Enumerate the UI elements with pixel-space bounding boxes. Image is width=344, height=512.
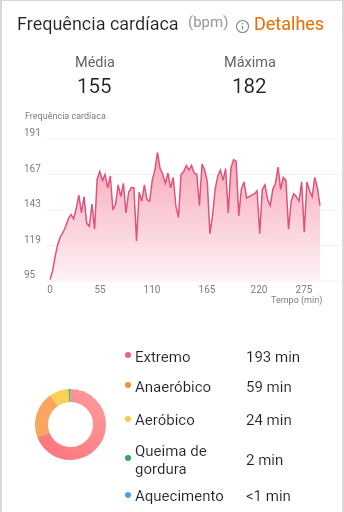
staticText: Detalhes <box>254 13 325 34</box>
staticText: 182 <box>232 74 267 98</box>
staticText: 165 <box>192 284 222 296</box>
staticText: Extremo <box>135 348 191 366</box>
staticText: Tempo (min) <box>271 295 323 306</box>
button[interactable]: Aeróbico <box>2 411 342 435</box>
staticText: 275 <box>289 284 319 296</box>
button[interactable]: Anaeróbico <box>2 378 342 402</box>
staticText: 191 <box>24 127 41 139</box>
staticText: 59 min <box>246 378 292 396</box>
staticText: Aquecimento <box>135 487 224 505</box>
button[interactable]: Detalhes <box>254 13 325 34</box>
staticText: Aeróbico <box>135 411 195 429</box>
staticText: 0 <box>35 284 65 296</box>
button[interactable]: Média <box>17 54 172 98</box>
staticText: 95 <box>24 269 36 281</box>
staticText: Média <box>75 54 115 71</box>
button[interactable]: Informações <box>235 19 250 34</box>
staticText: Anaeróbico <box>135 378 212 396</box>
staticText: 155 <box>77 74 112 98</box>
staticText: 143 <box>24 198 41 210</box>
staticText: <1 min <box>246 487 291 505</box>
staticText: Frequência cardíaca <box>25 111 106 122</box>
staticText: 193 min <box>246 348 301 366</box>
staticText: Máxima <box>224 54 276 71</box>
staticText: 220 <box>244 284 274 296</box>
staticText: 24 min <box>246 411 292 429</box>
button[interactable]: Extremo <box>2 348 342 372</box>
staticText: 110 <box>137 284 167 296</box>
staticText: 119 <box>24 234 41 246</box>
button[interactable]: Aquecimento <box>2 487 342 511</box>
staticText: 167 <box>24 163 41 175</box>
staticText: Queima de gordura <box>135 442 207 478</box>
staticText: Frequência cardíaca <box>17 13 179 34</box>
staticText: (bpm) <box>188 13 229 31</box>
staticText: 2 min <box>246 451 284 469</box>
staticText: 55 <box>85 284 115 296</box>
button[interactable]: Máxima <box>172 54 327 98</box>
button[interactable]: Queima de gordura <box>2 442 342 478</box>
